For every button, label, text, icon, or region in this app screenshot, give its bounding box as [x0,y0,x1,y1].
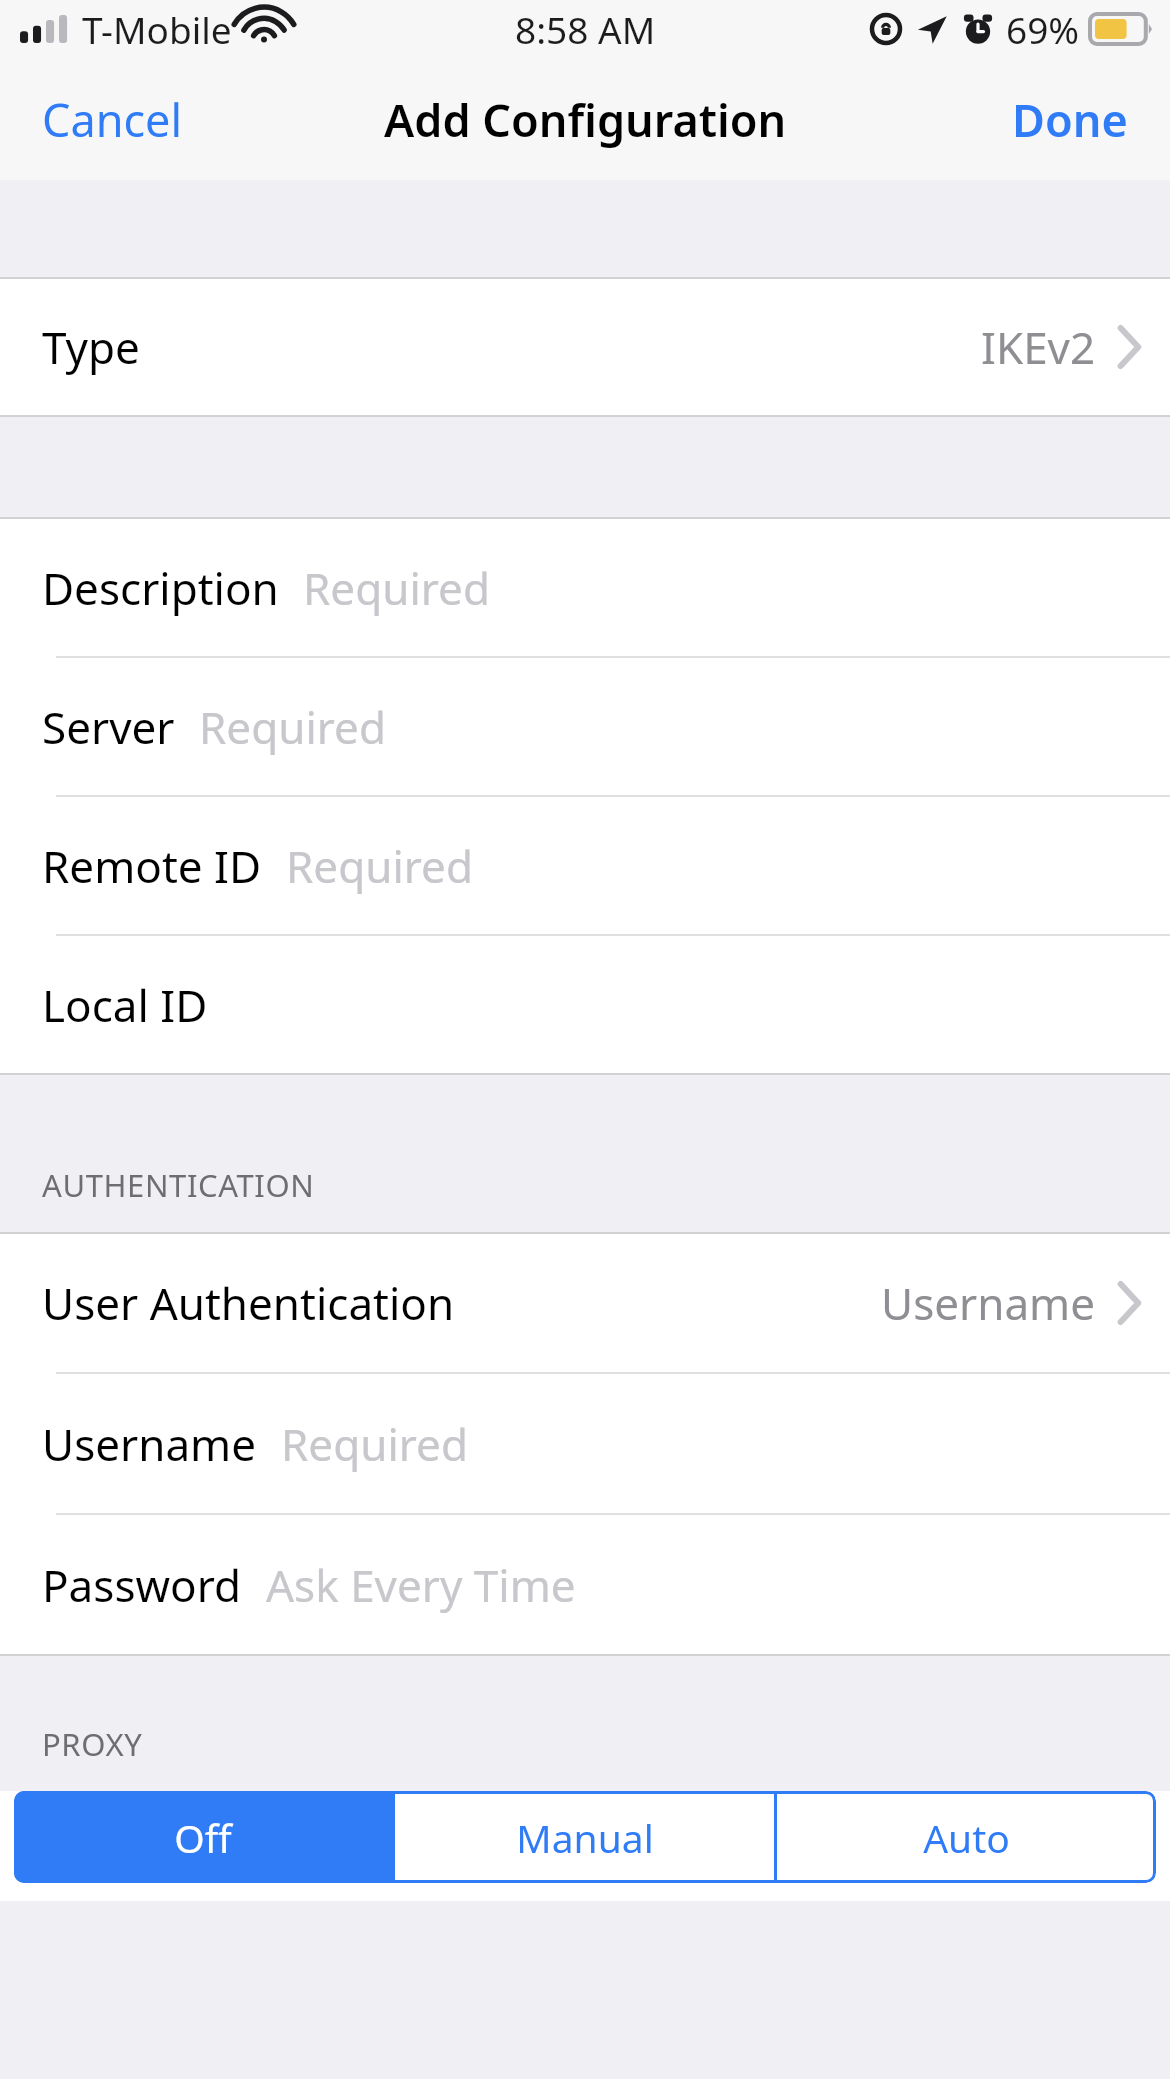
staticText: Required [303,558,490,618]
button[interactable]: Off [14,1791,392,1883]
staticText: Ask Every Time [266,1555,576,1615]
staticText: 8:58 AM [515,4,656,54]
button[interactable]: Description [0,519,1170,656]
staticText: Username [881,1273,1096,1333]
staticText: Required [199,697,386,757]
button[interactable]: Remote ID [0,797,1170,934]
staticText: User Authentication [42,1273,455,1333]
button[interactable]: Done [1012,89,1128,150]
staticText: Local ID [42,975,208,1035]
staticText: Done [1012,89,1128,150]
staticText: Add Configuration [384,89,787,150]
staticText: Description [42,558,279,618]
staticText: Cancel [42,89,183,150]
staticText: PROXY [42,1723,143,1765]
staticText: Auto [923,1811,1010,1864]
button[interactable]: Local ID [0,936,1170,1073]
button[interactable]: Server [0,658,1170,795]
staticText: Password [42,1555,242,1615]
button[interactable]: Username [0,1374,1170,1513]
staticText: Remote ID [42,836,262,896]
staticText: Off [174,1811,232,1864]
staticText: Type [42,317,140,377]
staticText: 69% [1006,4,1080,54]
staticText: Server [42,697,175,757]
button[interactable]: Password [0,1515,1170,1654]
staticText: Required [286,836,473,896]
button[interactable]: User Authentication [0,1234,1170,1372]
staticText: Required [281,1414,468,1474]
button[interactable]: Auto [777,1791,1156,1883]
staticText: AUTHENTICATION [42,1164,315,1206]
button[interactable]: Manual [395,1791,774,1883]
staticText: Username [42,1414,257,1474]
staticText: IKEv2 [981,317,1096,377]
button[interactable]: Type [0,279,1170,415]
staticText: Manual [516,1811,654,1864]
button[interactable]: Cancel [42,89,183,150]
staticText: T-Mobile [82,4,232,54]
